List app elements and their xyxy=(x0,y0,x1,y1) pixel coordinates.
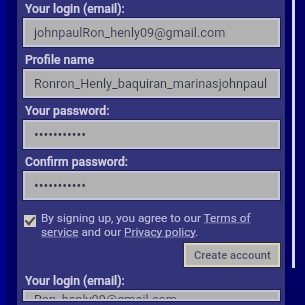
staticText: By signing up, you agree to our Terms of… xyxy=(41,211,281,239)
button[interactable]: Ronron_Henly_baquiran_marinasjohnpaul xyxy=(25,71,278,96)
staticText: Your login (email): xyxy=(25,274,125,288)
staticText: Create account xyxy=(194,249,271,262)
staticText: ••••••••••• xyxy=(34,178,86,194)
staticText: Profile name xyxy=(25,53,95,67)
button[interactable]: ••••••••••• xyxy=(25,122,278,147)
staticText: Confirm password: xyxy=(25,155,129,169)
staticText: Your login (email): xyxy=(25,2,125,16)
button[interactable]: Ron_henly09@gmail.com xyxy=(25,292,278,299)
staticText: Ronron_Henly_baquiran_marinasjohnpaul xyxy=(34,76,268,91)
staticText: ••••••••••• xyxy=(34,127,86,143)
button[interactable]: Create account xyxy=(186,245,278,265)
button[interactable]: johnpaulRon_henly09@gmail.com xyxy=(25,20,278,45)
staticText: Ron_henly09@gmail.com xyxy=(34,292,177,299)
staticText: johnpaulRon_henly09@gmail.com xyxy=(34,25,226,40)
button[interactable]: ••••••••••• xyxy=(25,173,278,198)
staticText: Your password: xyxy=(25,104,110,118)
button[interactable]: Agree to terms checkbox xyxy=(24,215,36,227)
